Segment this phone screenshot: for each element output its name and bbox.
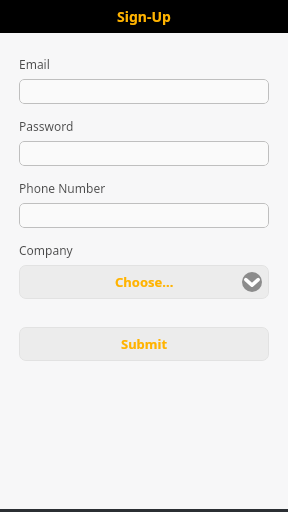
staticText: Phone Number [19,180,106,196]
staticText: Sign-Up [117,7,171,26]
other: Open company list [242,272,262,292]
button[interactable] [19,141,269,166]
staticText: Company [19,242,73,258]
staticText: Choose... [115,273,174,291]
button[interactable] [19,79,269,104]
staticText: Password [19,118,74,134]
staticText: Submit [121,335,168,353]
button[interactable]: Choose... [19,265,269,299]
button[interactable]: Submit [19,327,269,361]
button[interactable] [19,203,269,228]
staticText: Email [19,56,50,72]
